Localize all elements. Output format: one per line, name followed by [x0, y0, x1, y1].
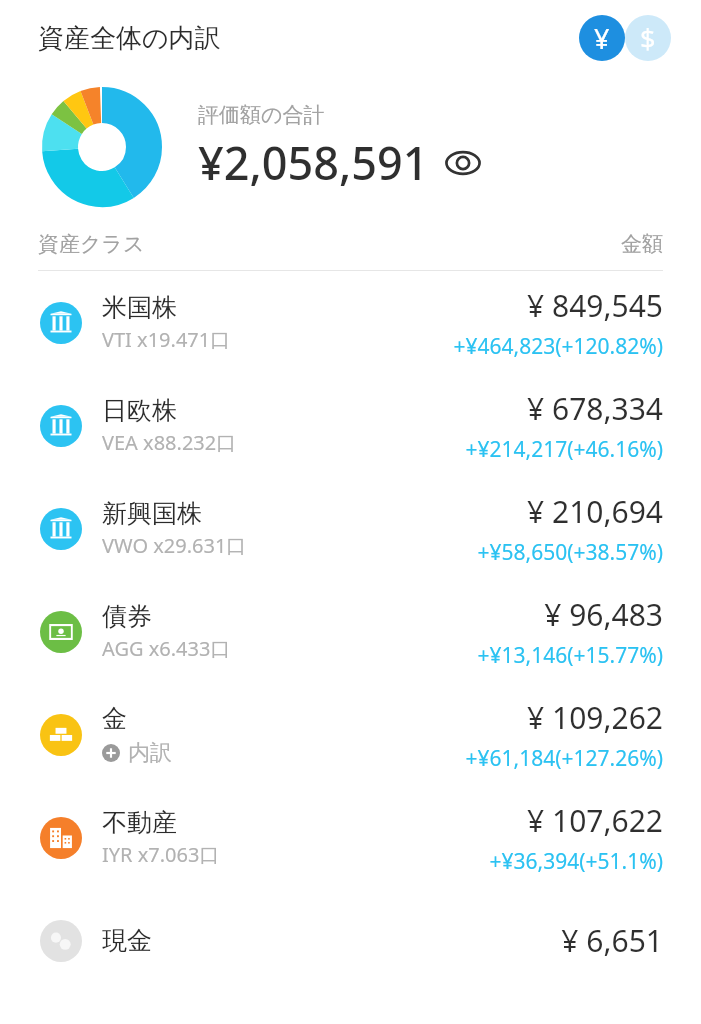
- staticText: +¥61,184(+127.26%): [465, 744, 663, 773]
- button[interactable]: 日欧株: [0, 374, 701, 477]
- button[interactable]: 債券: [0, 580, 701, 683]
- staticText: ¥ 109,262: [527, 697, 663, 738]
- staticText: 資産全体の内訳: [38, 22, 221, 55]
- button[interactable]: 新興国株: [0, 477, 701, 580]
- button[interactable]: 金: [0, 683, 701, 786]
- staticText: 資産クラス: [38, 231, 145, 257]
- button[interactable]: 米国株: [0, 271, 701, 374]
- staticText: VWO x29.631口: [102, 532, 247, 559]
- staticText: +¥13,146(+15.77%): [477, 641, 663, 670]
- staticText: 不動産: [102, 807, 177, 838]
- staticText: 内訳: [128, 739, 172, 767]
- staticText: 金額: [621, 231, 663, 257]
- staticText: 現金: [102, 925, 152, 956]
- staticText: +¥214,217(+46.16%): [465, 435, 663, 464]
- button[interactable]: Show amounts in dollars: [625, 15, 671, 61]
- button[interactable]: 内訳: [102, 739, 172, 767]
- staticText: 債券: [102, 601, 152, 632]
- staticText: IYR x7.063口: [102, 841, 220, 868]
- staticText: ¥ 849,545: [527, 285, 663, 326]
- staticText: 金: [102, 703, 127, 734]
- staticText: 米国株: [102, 292, 177, 323]
- button[interactable]: 不動産: [0, 786, 701, 889]
- staticText: AGG x6.433口: [102, 635, 231, 662]
- staticText: ¥ 96,483: [544, 594, 663, 635]
- button[interactable]: 現金: [0, 889, 701, 992]
- staticText: ¥ 107,622: [527, 800, 663, 841]
- staticText: +¥464,823(+120.82%): [453, 332, 663, 361]
- staticText: ¥ 678,334: [527, 388, 663, 429]
- staticText: +¥58,650(+38.57%): [477, 538, 663, 567]
- staticText: $: [640, 20, 656, 57]
- staticText: +¥36,394(+51.1%): [489, 847, 663, 876]
- button[interactable]: Show amounts in yen: [579, 15, 625, 61]
- button[interactable]: Toggle amount visibility: [443, 143, 483, 183]
- staticText: 新興国株: [102, 498, 202, 529]
- staticText: VTI x19.471口: [102, 326, 231, 353]
- staticText: VEA x88.232口: [102, 429, 237, 456]
- staticText: ¥ 210,694: [527, 491, 663, 532]
- staticText: ¥2,058,591: [198, 132, 429, 193]
- staticText: 日欧株: [102, 395, 177, 426]
- staticText: 評価額の合計: [198, 102, 325, 128]
- staticText: ¥ 6,651: [561, 920, 663, 961]
- staticText: ¥: [594, 20, 610, 57]
